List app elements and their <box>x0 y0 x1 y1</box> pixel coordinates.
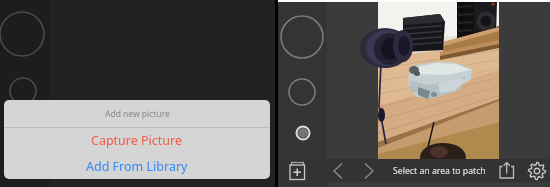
button[interactable]: Add layer <box>287 161 311 181</box>
button[interactable]: Redo <box>357 161 379 181</box>
button[interactable]: Share <box>497 161 519 181</box>
staticText: Add new picture <box>105 108 170 120</box>
button[interactable]: Add From Library <box>4 154 270 179</box>
button[interactable]: Undo <box>328 161 350 181</box>
button[interactable]: Settings <box>527 161 547 181</box>
button[interactable]: Capture Picture <box>4 128 270 153</box>
staticText: Capture Picture <box>91 132 183 149</box>
staticText: Select an area to patch <box>393 165 486 177</box>
staticText: Add From Library <box>86 158 188 175</box>
